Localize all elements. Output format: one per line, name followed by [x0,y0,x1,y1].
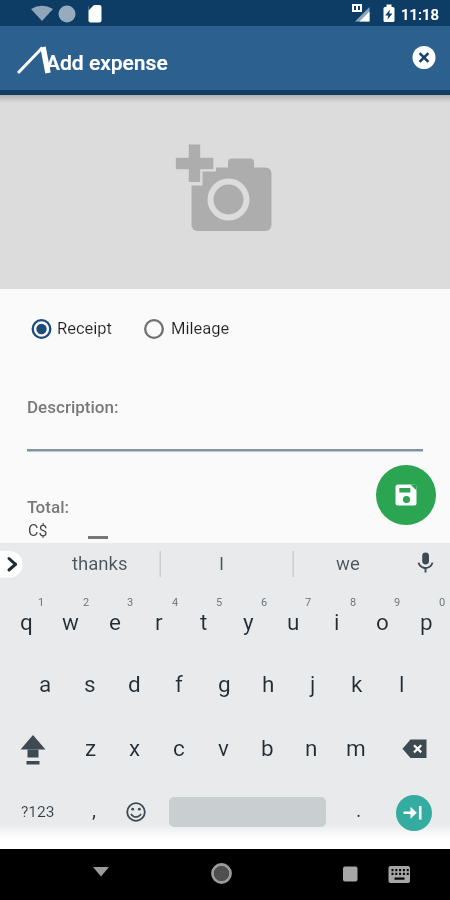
button[interactable]: n [289,720,333,776]
button[interactable]: l [380,656,424,712]
button[interactable] [396,795,432,831]
button[interactable]: v [201,720,245,776]
button[interactable] [24,312,120,346]
staticText: a [39,671,52,697]
staticText: ?123 [21,803,55,821]
staticText: 7 [305,596,312,609]
staticText: . [356,798,362,821]
staticText: 11:18 [401,6,440,24]
staticText: m [346,735,366,761]
staticText: w [62,609,79,635]
staticText: j [310,671,316,697]
staticText: g [218,671,231,697]
staticText: n [305,735,318,761]
button[interactable] [392,720,437,776]
button[interactable]: b [245,720,289,776]
staticText: t [200,609,208,635]
staticText: Total: [27,497,70,517]
staticText: 9 [394,596,401,609]
button[interactable] [406,40,442,76]
button[interactable] [77,852,125,900]
staticText: Add expense [46,51,168,76]
button[interactable]: x [113,720,157,776]
staticText: k [351,671,363,697]
button[interactable]: o [360,594,404,650]
staticText: we [336,553,360,575]
staticText: h [262,671,275,697]
button[interactable]: g [202,656,246,712]
button[interactable] [27,420,423,452]
staticText: d [128,671,141,697]
button[interactable]: a [23,656,67,712]
button[interactable] [138,312,238,346]
staticText: l [399,671,405,697]
button[interactable]: z [69,720,113,776]
button[interactable]: u [271,594,315,650]
button[interactable] [11,720,56,776]
button[interactable]: ?123 [10,784,66,840]
button[interactable]: e [93,594,137,650]
staticText: s [84,671,96,697]
button[interactable] [326,852,374,900]
staticText: i [334,609,340,635]
staticText: u [287,609,300,635]
button[interactable]: we [293,546,403,582]
button[interactable]: . [341,781,377,837]
button[interactable] [198,852,246,900]
button[interactable]: I [167,546,277,582]
button[interactable]: t [182,594,226,650]
staticText: thanks [72,553,128,575]
button[interactable]: i [315,594,359,650]
button[interactable] [0,546,30,582]
staticText: Receipt [57,319,112,338]
staticText: , [92,798,96,821]
staticText: 2 [83,596,90,609]
button[interactable] [118,784,154,840]
button[interactable]: w [48,594,92,650]
button[interactable]: j [291,656,335,712]
staticText: I [219,553,225,575]
button[interactable] [375,852,423,900]
staticText: b [261,735,274,761]
button[interactable]: , [76,781,112,837]
staticText: f [175,671,183,697]
staticText: 5 [216,596,223,609]
button[interactable]: f [157,656,201,712]
button[interactable]: q [4,594,48,650]
staticText: C$ [28,521,48,540]
button[interactable]: m [334,720,378,776]
staticText: c [173,735,185,761]
button[interactable] [376,465,436,525]
staticText: 0 [439,596,446,609]
staticText: p [420,609,433,635]
staticText: x [129,735,141,761]
staticText: 8 [350,596,357,609]
staticText: Mileage [171,319,230,338]
button[interactable]: k [335,656,379,712]
staticText: o [376,609,389,635]
staticText: e [109,609,121,635]
button[interactable]: p [404,594,448,650]
staticText: 6 [261,596,268,609]
button[interactable]: s [68,656,112,712]
button[interactable]: h [246,656,290,712]
button[interactable]: r [137,594,181,650]
staticText: q [20,609,33,635]
button[interactable]: c [157,720,201,776]
staticText: 3 [127,596,134,609]
staticText: v [218,735,229,761]
button[interactable] [0,95,450,289]
staticText: Description: [27,397,119,417]
button[interactable]: thanks [40,546,160,582]
button[interactable] [408,546,450,582]
button[interactable]: d [112,656,156,712]
staticText: y [243,609,254,635]
staticText: r [155,609,163,635]
button[interactable]: y [226,594,270,650]
staticText: 1 [38,596,45,609]
staticText: z [85,735,97,761]
staticText: 4 [172,596,179,609]
